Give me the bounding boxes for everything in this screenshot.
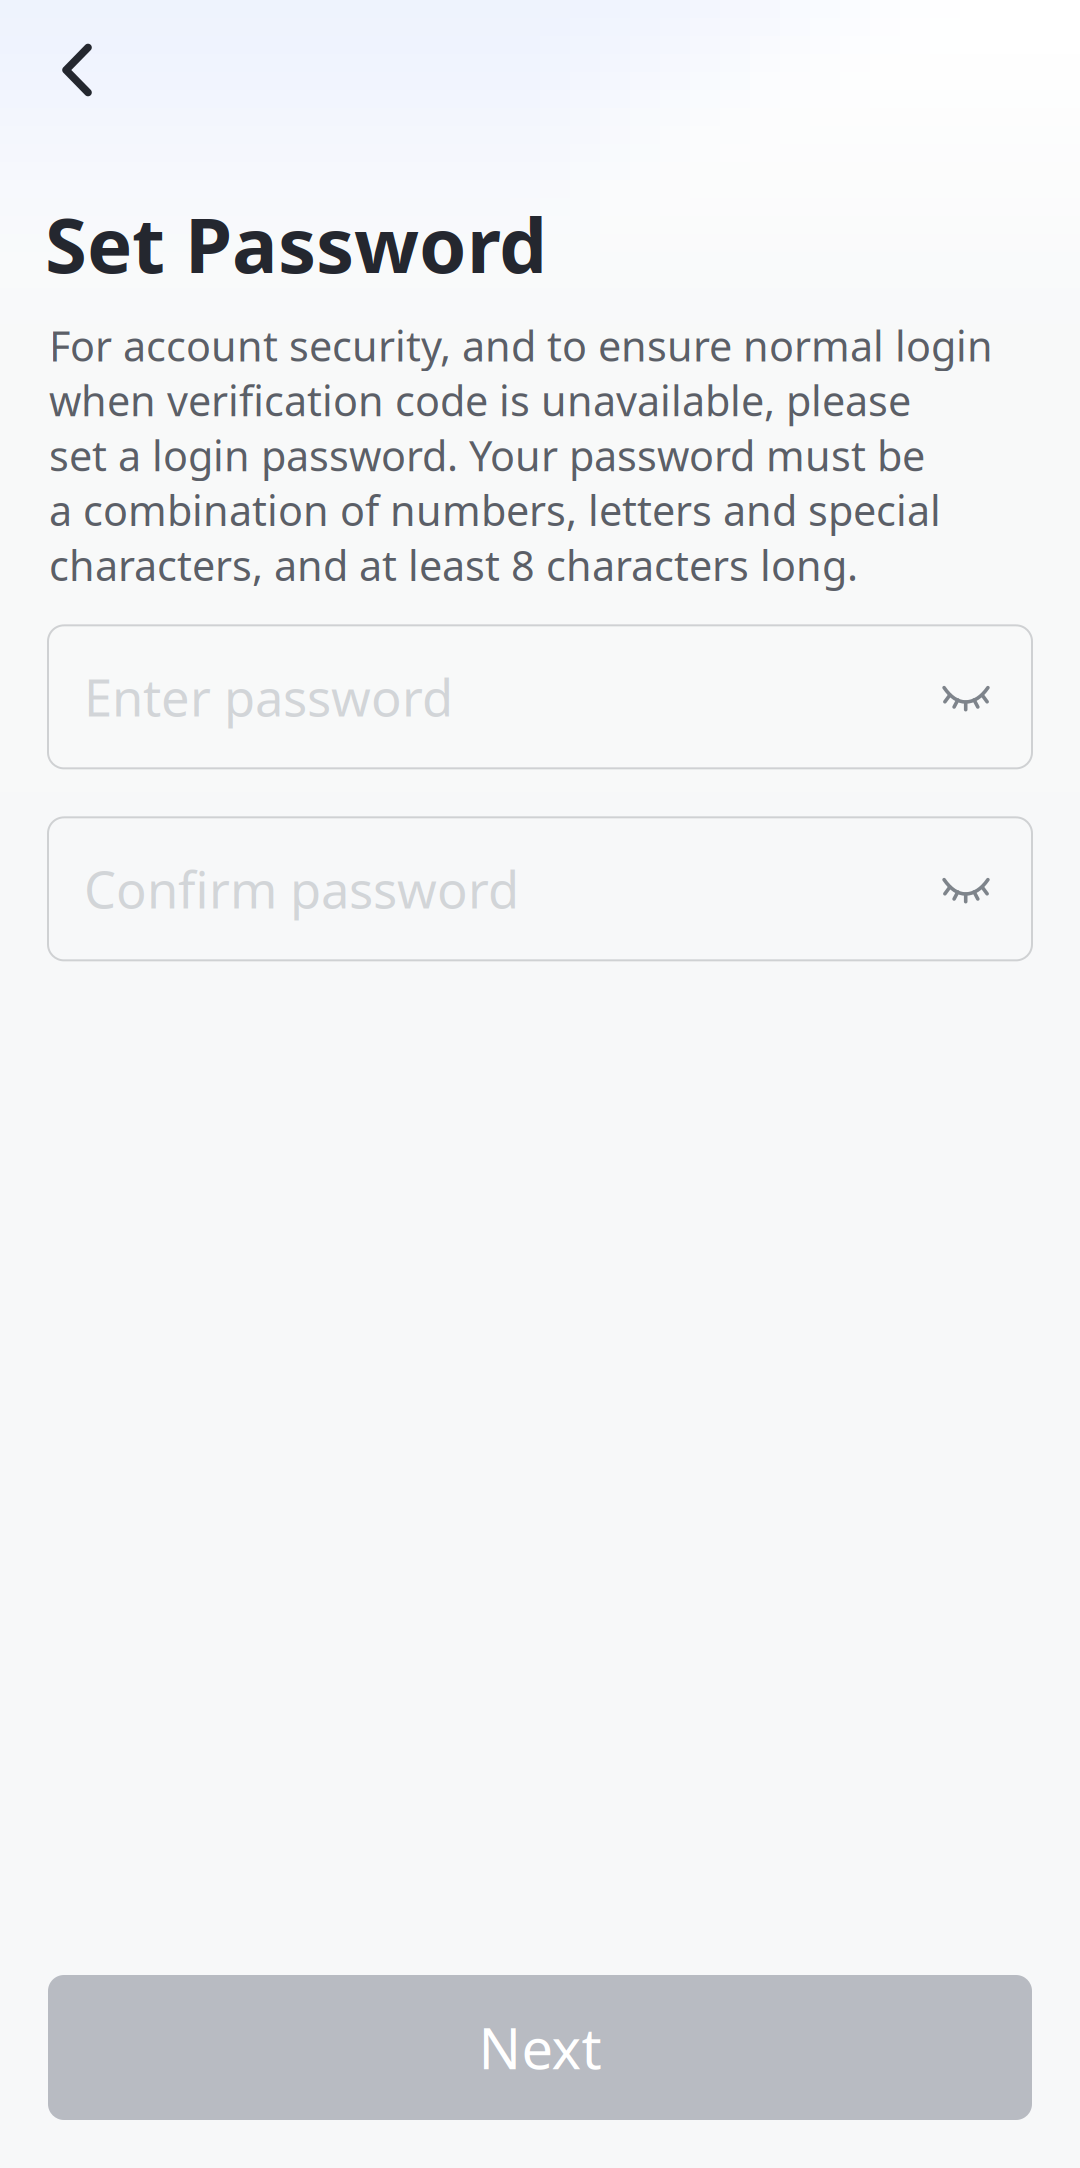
button[interactable]: Show password (897, 625, 1032, 768)
staticText: Confirm password (84, 855, 519, 922)
staticText: Enter password (84, 663, 453, 730)
button[interactable]: Enter password (48, 625, 1032, 768)
button[interactable]: Next (48, 1975, 1032, 2120)
staticText: Next (478, 2010, 601, 2085)
button[interactable]: Back (33, 26, 121, 114)
button[interactable]: Show confirm password (897, 817, 1032, 960)
staticText: For account security, and to ensure norm… (49, 318, 993, 592)
button[interactable]: Confirm password (48, 817, 1032, 960)
staticText: Set Password (45, 193, 547, 294)
